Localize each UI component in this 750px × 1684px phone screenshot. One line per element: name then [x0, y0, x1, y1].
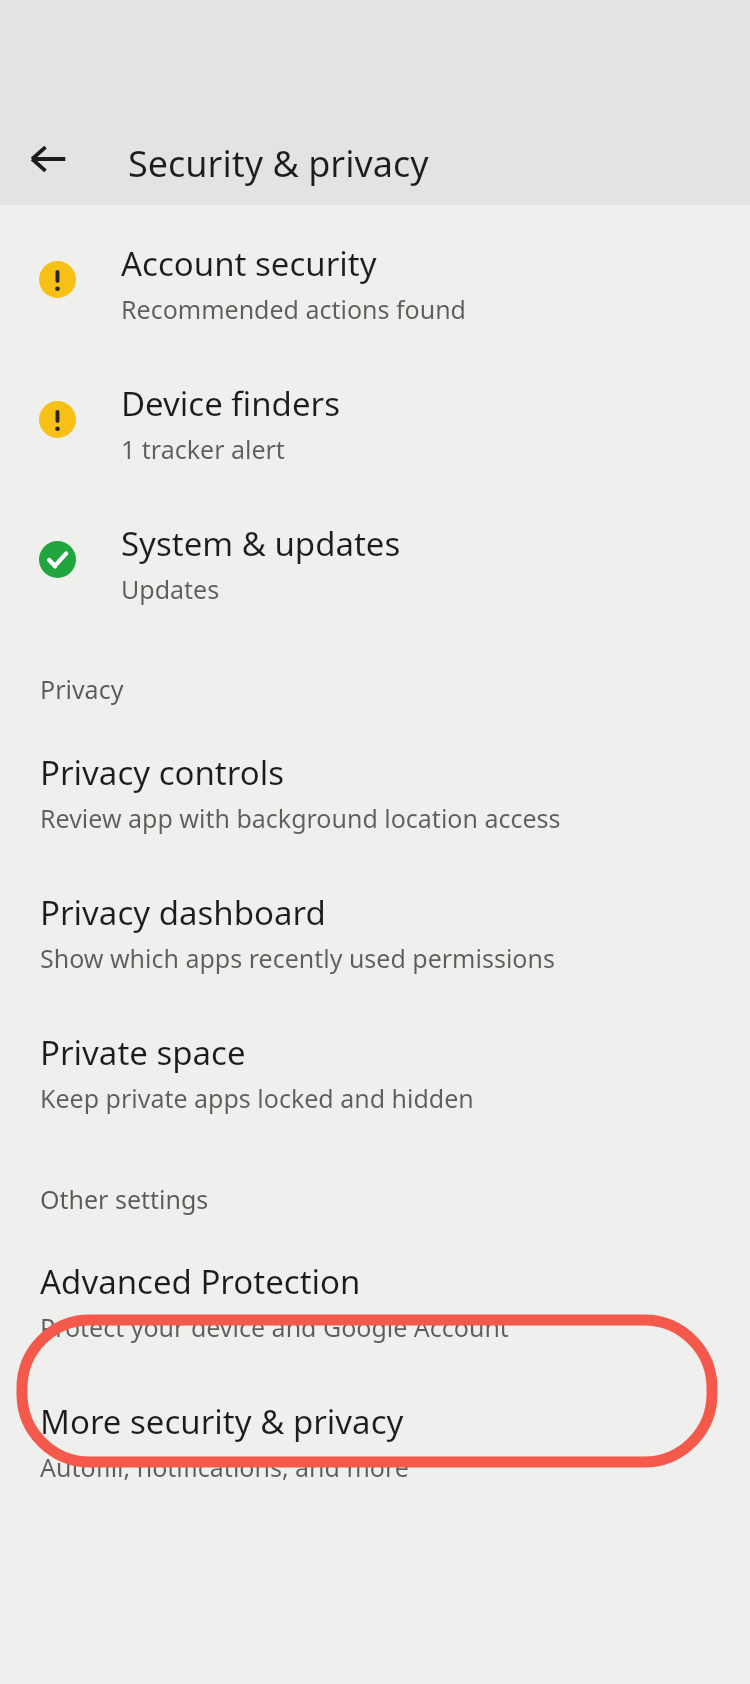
staticText: Updates — [121, 572, 220, 606]
staticText: Account security — [121, 241, 377, 286]
staticText: 1 tracker alert — [121, 432, 285, 466]
staticText: System & updates — [121, 521, 401, 566]
staticText: Autofill, notifications, and more — [40, 1450, 409, 1484]
button[interactable]: Privacy dashboard — [0, 864, 750, 1002]
staticText: Review app with background location acce… — [40, 801, 561, 835]
staticText: Privacy controls — [40, 750, 285, 795]
staticText: Privacy — [40, 672, 124, 706]
staticText: Protect your device and Google Account — [40, 1310, 509, 1344]
button[interactable]: System & updates — [0, 495, 750, 633]
staticText: Private space — [40, 1030, 246, 1075]
button[interactable]: More security & privacy — [0, 1373, 750, 1511]
button[interactable]: Privacy controls — [0, 724, 750, 862]
button[interactable]: Advanced Protection — [0, 1233, 750, 1371]
button[interactable]: Account security — [0, 215, 750, 353]
button[interactable]: Device finders — [0, 355, 750, 493]
staticText: Device finders — [121, 381, 340, 426]
button[interactable]: Back — [20, 131, 76, 187]
staticText: Keep private apps locked and hidden — [40, 1081, 474, 1115]
staticText: Advanced Protection — [40, 1259, 361, 1304]
staticText: Recommended actions found — [121, 292, 466, 326]
staticText: Security & privacy — [128, 139, 429, 188]
staticText: Privacy dashboard — [40, 890, 326, 935]
staticText: Other settings — [40, 1182, 209, 1216]
staticText: More security & privacy — [40, 1399, 404, 1444]
staticText: Show which apps recently used permission… — [40, 941, 555, 975]
button[interactable]: Private space — [0, 1004, 750, 1142]
